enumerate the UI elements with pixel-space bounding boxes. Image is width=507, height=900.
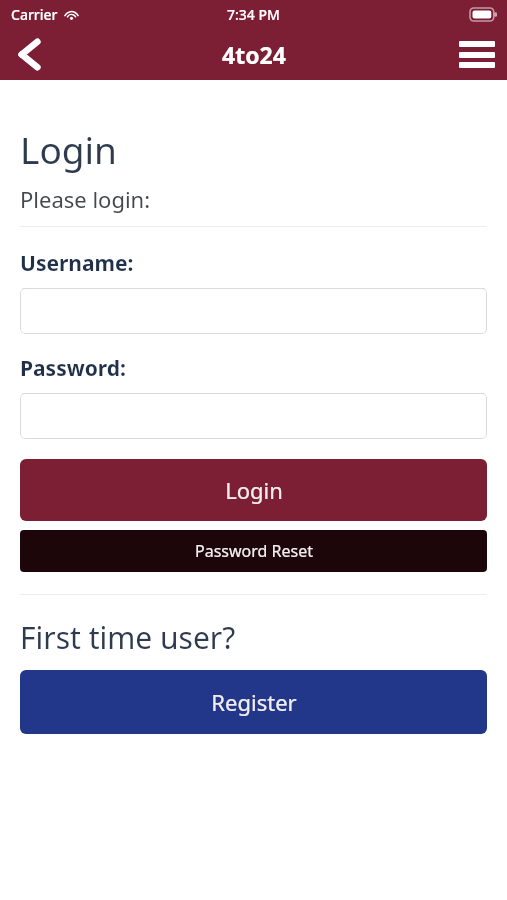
button[interactable]: Register xyxy=(20,670,487,734)
staticText: Password Reset xyxy=(195,540,313,562)
staticText: First time user? xyxy=(20,617,236,658)
staticText: 7:34 PM xyxy=(227,5,280,24)
staticText: Register xyxy=(211,687,297,717)
button[interactable]: Menu xyxy=(447,28,507,80)
staticText: Username: xyxy=(20,249,134,278)
button[interactable]: Login xyxy=(20,459,487,521)
staticText: Carrier xyxy=(11,5,58,24)
button[interactable]: Password Reset xyxy=(20,530,487,572)
button[interactable]: Back xyxy=(0,28,58,80)
staticText: Please login: xyxy=(20,184,151,214)
staticText: 4to24 xyxy=(222,39,286,70)
button[interactable] xyxy=(20,393,487,439)
staticText: Login xyxy=(20,124,117,174)
button[interactable] xyxy=(20,288,487,334)
staticText: Password: xyxy=(20,354,126,383)
staticText: Login xyxy=(225,475,283,505)
